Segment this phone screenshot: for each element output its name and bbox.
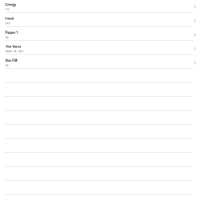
staticText: dance [5,22,10,25]
staticText: The Voice [5,45,21,49]
staticText: pop [5,64,8,67]
button[interactable]: Радио 1 [0,28,200,42]
staticText: Star FM [5,59,17,63]
staticText: Energy [5,3,16,7]
button[interactable]: Energy [0,0,200,14]
staticText: Радио 1 [5,31,17,35]
staticText: classical, folk, dance [5,50,23,53]
button[interactable]: Star FM [0,56,200,70]
staticText: rock [5,8,9,11]
button[interactable]: Fresh [0,14,200,28]
staticText: pop [5,36,8,39]
staticText: Fresh [5,17,14,21]
button[interactable]: The Voice [0,42,200,56]
